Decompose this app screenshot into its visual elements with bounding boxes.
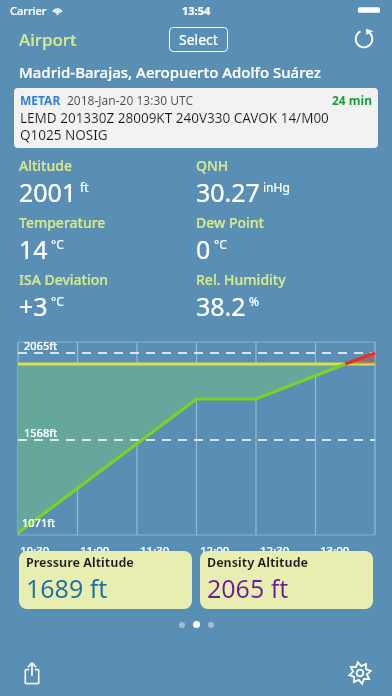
staticText: Rel. Humidity [196, 270, 286, 289]
staticText: Temperature [19, 213, 106, 232]
staticText: Dew Point [196, 213, 264, 232]
button[interactable]: Share [12, 653, 52, 693]
staticText: 10:30 [20, 543, 50, 559]
staticText: 2001 [19, 175, 77, 209]
staticText: Carrier [10, 3, 47, 18]
staticText: 13:54 [182, 3, 211, 18]
staticText: Select [179, 30, 218, 49]
staticText: inHg [263, 179, 290, 195]
staticText: °C [214, 236, 227, 252]
staticText: Madrid-Barajas, Aeropuerto Adolfo Suárez [19, 62, 321, 82]
button[interactable]: Pressure Altitude [19, 551, 192, 609]
staticText: QNH [196, 156, 229, 175]
staticText: LEMD 201330Z 28009KT 240V330 CAVOK 14/M0… [20, 109, 372, 144]
button[interactable]: Airport [19, 28, 77, 51]
staticText: 11:30 [140, 543, 170, 559]
button[interactable]: Density Altitude [200, 551, 373, 609]
staticText: 38.2 [196, 289, 246, 323]
staticText: °C [51, 293, 64, 309]
staticText: °C [51, 236, 64, 252]
staticText: 1689 ft [26, 571, 108, 605]
staticText: 0 [196, 232, 211, 266]
staticText: METAR [20, 92, 61, 108]
staticText: Pressure Altitude [26, 554, 134, 571]
staticText: ft [80, 179, 89, 195]
staticText: 12:00 [200, 543, 230, 559]
staticText: Altitude [19, 156, 72, 175]
button[interactable]: Select [169, 27, 228, 52]
staticText: 14 [19, 232, 48, 266]
staticText: 2065ft [24, 338, 58, 353]
button[interactable]: Settings [340, 653, 380, 693]
staticText: 1568ft [24, 425, 58, 440]
staticText: 2065 ft [207, 571, 289, 605]
staticText: 12:30 [260, 543, 290, 559]
staticText: 30.27 [196, 175, 260, 209]
staticText: 1071ft [22, 515, 56, 530]
staticText: ISA Deviation [19, 270, 109, 289]
staticText: % [249, 293, 259, 309]
button[interactable]: Refresh [348, 23, 380, 55]
staticText: Density Altitude [207, 554, 309, 571]
staticText: 2018-Jan-20 13:30 UTC [67, 92, 194, 108]
staticText: +3 [19, 289, 48, 323]
button[interactable]: METAR [14, 88, 378, 148]
staticText: 13:00 [320, 543, 350, 559]
staticText: 11:00 [80, 543, 110, 559]
staticText: 24 min [332, 92, 372, 108]
